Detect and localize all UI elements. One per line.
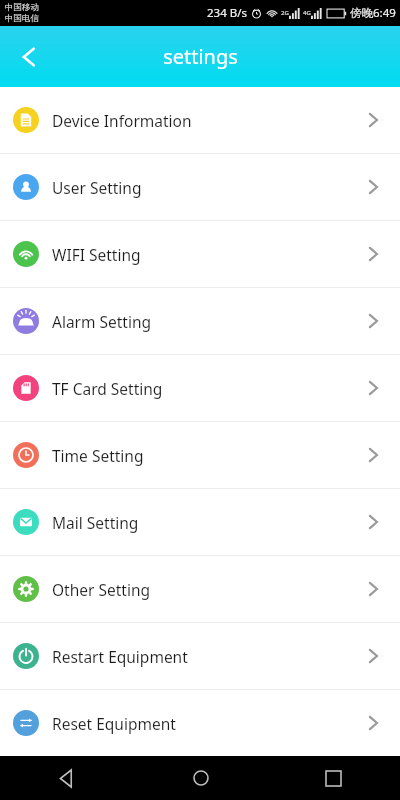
- button[interactable]: WIFI Setting: [0, 221, 400, 287]
- staticText: Time Setting: [52, 445, 144, 466]
- staticText: User Setting: [52, 177, 142, 198]
- button[interactable]: Alarm Setting: [0, 288, 400, 354]
- staticText: TF Card Setting: [52, 378, 163, 399]
- staticText: 中国电信: [5, 13, 39, 24]
- staticText: Device Information: [52, 110, 192, 131]
- staticText: Mail Setting: [52, 512, 139, 533]
- button[interactable]: Restart Equipment: [0, 623, 400, 689]
- staticText: 中国移动: [5, 2, 39, 13]
- button[interactable]: Reset Equipment: [0, 690, 400, 756]
- staticText: 234 B/s: [207, 5, 247, 21]
- button[interactable]: User Setting: [0, 154, 400, 220]
- staticText: WIFI Setting: [52, 244, 141, 265]
- button[interactable]: Back: [0, 26, 58, 87]
- staticText: 2G: [281, 9, 289, 17]
- button[interactable]: Mail Setting: [0, 489, 400, 555]
- button[interactable]: TF Card Setting: [0, 355, 400, 421]
- button[interactable]: Home: [134, 756, 267, 800]
- staticText: Alarm Setting: [52, 311, 152, 332]
- button[interactable]: Recent apps: [267, 756, 400, 800]
- button[interactable]: Back: [0, 756, 134, 800]
- staticText: 4G: [303, 9, 311, 17]
- staticText: 傍晚6:49: [350, 5, 396, 21]
- staticText: settings: [163, 43, 238, 70]
- staticText: Restart Equipment: [52, 646, 188, 667]
- staticText: Reset Equipment: [52, 713, 176, 734]
- staticText: Other Setting: [52, 579, 151, 600]
- button[interactable]: Time Setting: [0, 422, 400, 488]
- button[interactable]: Other Setting: [0, 556, 400, 622]
- button[interactable]: Device Information: [0, 87, 400, 153]
